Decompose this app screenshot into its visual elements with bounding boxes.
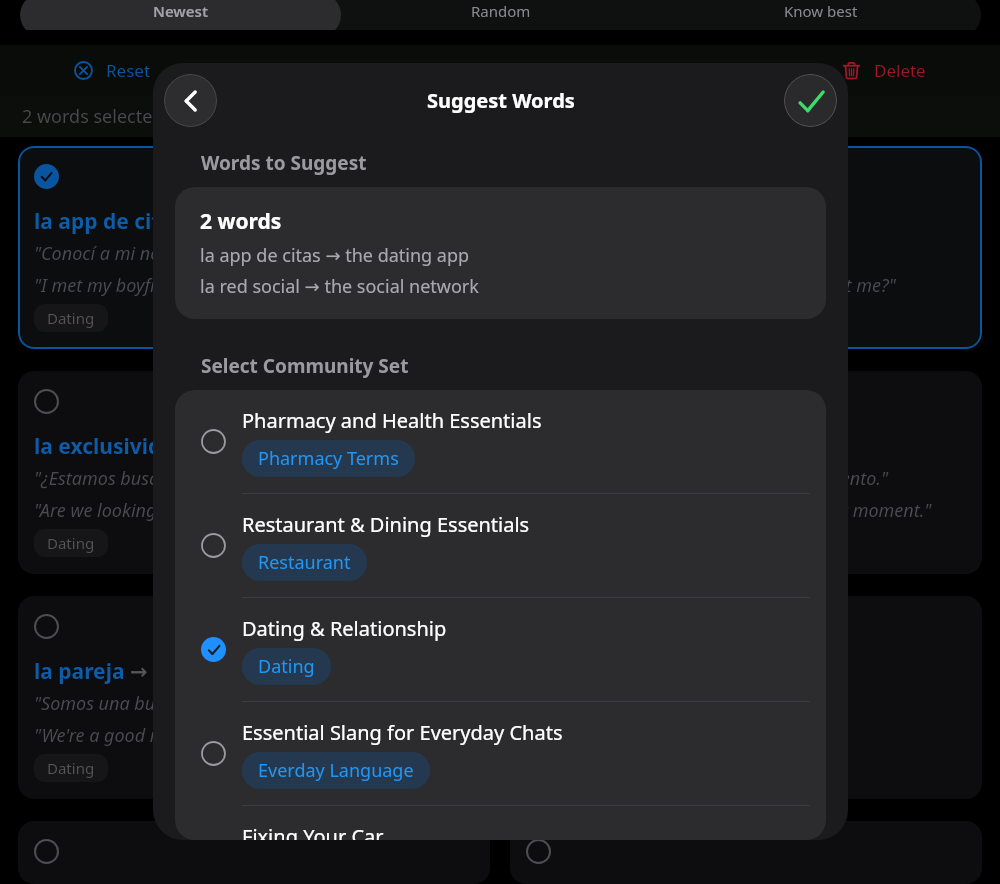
staticText: la exclusividad → exclusivity bbox=[34, 432, 327, 461]
staticText: "Me gustó mucho desde el primer momento.… bbox=[526, 466, 889, 491]
button[interactable]: la app de citas → the dating app bbox=[18, 146, 490, 349]
button[interactable]: Essential Slang for Everyday Chats bbox=[175, 702, 826, 806]
button[interactable]: la ciudad → the city bbox=[18, 821, 490, 884]
button[interactable]: la exclusividad → exclusivity bbox=[18, 371, 490, 574]
staticText: Know best bbox=[784, 1, 858, 21]
staticText: Dating bbox=[47, 308, 95, 328]
staticText: "Are we looking for exclusivity?" bbox=[34, 498, 285, 523]
staticText: "¿Estamos buscando exclusividad?" bbox=[34, 466, 315, 491]
staticText: Dating bbox=[47, 533, 95, 553]
staticText: Random bbox=[471, 1, 531, 21]
staticText: Pharmacy Terms bbox=[258, 446, 399, 471]
staticText: "Tuvimos una cita." bbox=[526, 691, 680, 716]
button[interactable]: Delete bbox=[842, 59, 926, 82]
staticText: Dating bbox=[47, 758, 95, 778]
button[interactable]: Newest bbox=[20, 0, 341, 30]
staticText: Suggest Words bbox=[427, 87, 575, 114]
button[interactable]: la pareja → the partner bbox=[18, 596, 490, 799]
staticText: Reset bbox=[106, 59, 151, 82]
button[interactable]: Restaurant & Dining Essentials bbox=[175, 494, 826, 598]
staticText: Fixing Your Car bbox=[242, 823, 384, 840]
button[interactable]: Back bbox=[164, 74, 217, 127]
button[interactable]: el amor → love bbox=[510, 821, 982, 884]
staticText: la app de citas → the dating app bbox=[200, 243, 470, 268]
staticText: Pharmacy and Health Essentials bbox=[242, 407, 542, 434]
staticText: la pareja → the partner bbox=[34, 657, 274, 686]
staticText: el crush → my big secret crush bbox=[526, 432, 842, 461]
button[interactable]: Dating & Relationship bbox=[175, 598, 826, 702]
staticText: Everday Language bbox=[258, 758, 414, 783]
button[interactable]: Random bbox=[341, 0, 661, 30]
staticText: "We had a date." bbox=[526, 723, 661, 748]
button[interactable]: hacer ghosting → to ghost bbox=[510, 146, 982, 349]
staticText: "I liked him so much right from that fir… bbox=[526, 498, 932, 523]
button[interactable]: Confirm bbox=[784, 74, 837, 127]
staticText: "Somos una buena pareja." bbox=[34, 691, 253, 716]
staticText: 2 words bbox=[200, 207, 282, 236]
staticText: Dating & Relationship bbox=[242, 615, 447, 642]
staticText: Restaurant bbox=[258, 550, 351, 575]
staticText: "We're a good match." bbox=[34, 723, 213, 748]
button[interactable]: el crush → my big secret crush bbox=[510, 371, 982, 574]
button[interactable]: Pharmacy and Health Essentials bbox=[175, 390, 826, 494]
staticText: la app de citas → the dating app bbox=[34, 207, 366, 236]
button[interactable]: Know best bbox=[661, 0, 981, 30]
staticText: Newest bbox=[153, 1, 209, 21]
staticText: Delete bbox=[874, 59, 926, 82]
staticText: Dating bbox=[539, 308, 587, 328]
staticText: Essential Slang for Everyday Chats bbox=[242, 719, 563, 746]
staticText: "Conocí a mi novio en la app de citas." bbox=[34, 241, 340, 266]
staticText: "Did he leave me on read or did he ghost… bbox=[526, 273, 896, 298]
staticText: la red social → the social network bbox=[200, 274, 479, 299]
button[interactable]: la cita → the date bbox=[510, 596, 982, 799]
staticText: Words to Suggest bbox=[201, 150, 367, 176]
staticText: 2 words selected bbox=[22, 104, 164, 129]
staticText: Dating bbox=[258, 654, 315, 679]
staticText: "I met my boyfriend on the dating app." bbox=[34, 273, 352, 298]
staticText: Select Community Set bbox=[201, 353, 409, 379]
staticText: Restaurant & Dining Essentials bbox=[242, 511, 530, 538]
button[interactable]: Reset bbox=[74, 59, 151, 82]
button[interactable]: Fixing Your Car bbox=[175, 806, 826, 840]
